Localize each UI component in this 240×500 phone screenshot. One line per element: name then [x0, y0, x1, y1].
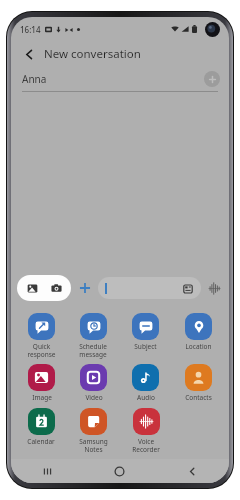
button[interactable]: Audio: [132, 363, 159, 403]
button[interactable]: Recents: [11, 459, 83, 483]
button[interactable]: Contacts: [185, 363, 212, 403]
button[interactable]: Gallery: [24, 280, 40, 296]
staticText: Contacts: [185, 393, 212, 402]
staticText: Location: [185, 342, 212, 351]
button[interactable]: Image: [28, 363, 55, 403]
staticText: Schedule message: [79, 342, 107, 359]
staticText: Voice Recorder: [132, 437, 160, 454]
button[interactable]: Back: [19, 44, 39, 64]
button[interactable]: Camera: [48, 280, 64, 296]
button[interactable]: Quick response: [27, 312, 56, 360]
button[interactable]: More attachments: [76, 279, 94, 297]
staticText: Quick response: [27, 342, 56, 359]
button[interactable]: Samsung Notes: [79, 407, 108, 455]
button[interactable]: Back: [156, 459, 229, 483]
button[interactable]: Voice Recorder: [132, 407, 160, 455]
staticText: Audio: [137, 393, 155, 402]
button[interactable]: Schedule message: [79, 312, 107, 360]
staticText: Subject: [134, 342, 157, 351]
staticText: Anna: [22, 72, 47, 86]
other: Stickers: [181, 282, 194, 295]
button[interactable]: Video: [80, 363, 107, 403]
staticText: New conversation: [44, 46, 141, 62]
button[interactable]: Subject: [132, 312, 159, 352]
staticText: Samsung Notes: [79, 437, 108, 454]
staticText: Calendar: [27, 437, 55, 446]
button[interactable]: Calendar: [27, 407, 55, 447]
button[interactable]: Stickers: [98, 277, 201, 299]
staticText: Video: [85, 393, 103, 402]
staticText: 16:14: [20, 24, 41, 35]
button[interactable]: Location: [185, 312, 212, 352]
button[interactable]: Home: [83, 459, 156, 483]
button[interactable]: Voice input: [205, 279, 223, 297]
staticText: Image: [32, 393, 52, 402]
button[interactable]: Add recipient: [204, 71, 220, 87]
